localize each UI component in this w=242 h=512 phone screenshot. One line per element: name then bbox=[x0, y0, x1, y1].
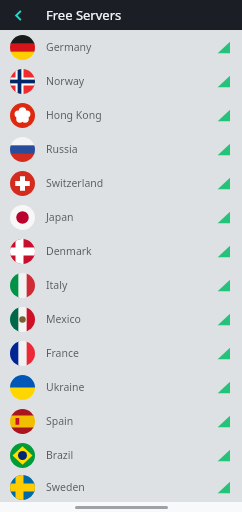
other: Signal strength bbox=[215, 345, 231, 361]
other: Signal strength bbox=[215, 175, 231, 191]
other: Signal strength bbox=[215, 107, 231, 123]
staticText: Switzerland bbox=[46, 176, 215, 190]
button[interactable]: Sweden bbox=[0, 472, 242, 502]
other: Signal strength bbox=[215, 311, 231, 327]
button[interactable]: Germany bbox=[0, 30, 242, 64]
staticText: Denmark bbox=[46, 244, 215, 258]
staticText: France bbox=[46, 346, 215, 360]
button[interactable]: France bbox=[0, 336, 242, 370]
other: Signal strength bbox=[215, 141, 231, 157]
button[interactable]: Russia bbox=[0, 132, 242, 166]
button[interactable]: Brazil bbox=[0, 438, 242, 472]
staticText: Russia bbox=[46, 142, 215, 156]
button[interactable]: Norway bbox=[0, 64, 242, 98]
button[interactable]: Mexico bbox=[0, 302, 242, 336]
button[interactable]: Hong Kong bbox=[0, 98, 242, 132]
other: Signal strength bbox=[215, 39, 231, 55]
other: Signal strength bbox=[215, 413, 231, 429]
other: Signal strength bbox=[215, 379, 231, 395]
staticText: Free Servers bbox=[46, 6, 122, 24]
staticText: Mexico bbox=[46, 312, 215, 326]
other: Signal strength bbox=[215, 479, 231, 495]
button[interactable]: Japan bbox=[0, 200, 242, 234]
staticText: Brazil bbox=[46, 448, 215, 462]
staticText: Sweden bbox=[46, 480, 215, 494]
other: Signal strength bbox=[215, 447, 231, 463]
button[interactable]: Spain bbox=[0, 404, 242, 438]
other: Signal strength bbox=[215, 73, 231, 89]
staticText: Ukraine bbox=[46, 380, 215, 394]
other: Signal strength bbox=[215, 209, 231, 225]
staticText: Norway bbox=[46, 74, 215, 88]
other: Signal strength bbox=[215, 243, 231, 259]
button[interactable]: Back bbox=[7, 4, 29, 26]
staticText: Germany bbox=[46, 40, 215, 54]
staticText: Hong Kong bbox=[46, 108, 215, 122]
button[interactable]: Ukraine bbox=[0, 370, 242, 404]
other: Signal strength bbox=[215, 277, 231, 293]
staticText: Japan bbox=[46, 210, 215, 224]
staticText: Spain bbox=[46, 414, 215, 428]
button[interactable]: Italy bbox=[0, 268, 242, 302]
staticText: Italy bbox=[46, 278, 215, 292]
button[interactable]: Denmark bbox=[0, 234, 242, 268]
button[interactable]: Switzerland bbox=[0, 166, 242, 200]
